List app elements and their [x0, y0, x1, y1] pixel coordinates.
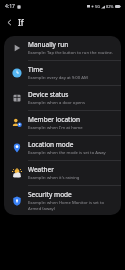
staticText: Location mode: [28, 140, 74, 149]
staticText: Example: every day at 9:00 AM: [28, 75, 88, 81]
staticText: Security mode: [28, 190, 72, 199]
button[interactable]: Back: [0, 13, 18, 31]
button[interactable]: Manually run: [4, 36, 121, 60]
staticText: If: [18, 17, 24, 28]
staticText: 4:17: [5, 3, 15, 10]
button[interactable]: Weather: [4, 161, 121, 185]
staticText: Example: when the mode is set to Away: [28, 150, 106, 156]
staticText: Example: when I'm at home: [28, 125, 83, 131]
staticText: Manually run: [28, 40, 69, 49]
staticText: Example: when Home Monitor is set to Arm…: [28, 200, 116, 211]
staticText: 5G: [95, 4, 100, 9]
button[interactable]: Security mode: [4, 186, 121, 215]
button[interactable]: Location mode: [4, 136, 121, 160]
staticText: Example: Tap the button to run the routi…: [28, 50, 114, 56]
button[interactable]: Device status: [4, 86, 121, 110]
button[interactable]: Time: [4, 61, 121, 85]
staticText: 82%: [106, 4, 114, 9]
staticText: Time: [28, 65, 44, 74]
staticText: Device status: [28, 90, 69, 99]
button[interactable]: Member location: [4, 111, 121, 135]
staticText: Weather: [28, 165, 54, 174]
staticText: Example: when it's raining: [28, 175, 80, 181]
staticText: Member location: [28, 115, 81, 124]
staticText: Example: when a door opens: [28, 100, 85, 106]
